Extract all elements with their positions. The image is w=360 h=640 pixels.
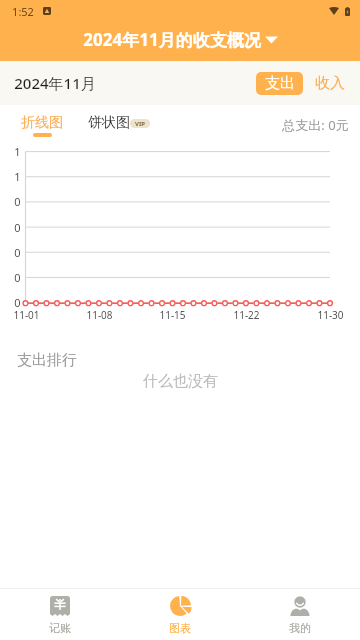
staticText: 图表 <box>169 621 191 635</box>
button[interactable]: 支出 <box>256 72 303 95</box>
staticText: 2024年11月的收支概况 <box>83 28 261 51</box>
staticText: 11-30 <box>317 308 344 322</box>
staticText: 11-01 <box>13 308 40 322</box>
staticText: 什么也没有 <box>143 372 218 391</box>
staticText: 11-22 <box>233 308 260 322</box>
button[interactable]: 2024年11月的收支概况 <box>0 20 360 59</box>
button[interactable]: 折线图 <box>21 114 63 137</box>
staticText: 支出排行 <box>17 351 77 370</box>
staticText: 1 <box>14 144 21 159</box>
staticText: 0 <box>14 245 21 260</box>
staticText: 我的 <box>289 621 311 635</box>
staticText: 0 <box>14 270 21 285</box>
staticText: 饼状图 <box>88 114 130 132</box>
staticText: 0 <box>14 220 21 235</box>
staticText: 2024年11月 <box>14 73 96 93</box>
staticText: 支出 <box>265 74 295 93</box>
button[interactable]: 记账 <box>0 589 120 640</box>
staticText: 折线图 <box>21 114 63 132</box>
staticText: VIP <box>135 120 145 128</box>
staticText: 收入 <box>315 74 345 93</box>
staticText: 记账 <box>49 621 71 635</box>
staticText: 总支出: 0元 <box>282 116 349 134</box>
button[interactable]: 收入 <box>314 72 346 95</box>
staticText: 1:52 <box>12 4 34 19</box>
staticText: 0 <box>14 295 21 310</box>
button[interactable]: 饼状图 <box>88 114 150 132</box>
staticText: 0 <box>14 194 21 209</box>
button[interactable]: 我的 <box>240 589 360 640</box>
button[interactable]: 图表 <box>120 589 240 640</box>
staticText: 1 <box>14 169 21 184</box>
staticText: 11-08 <box>86 308 113 322</box>
staticText: 11-15 <box>159 308 186 322</box>
